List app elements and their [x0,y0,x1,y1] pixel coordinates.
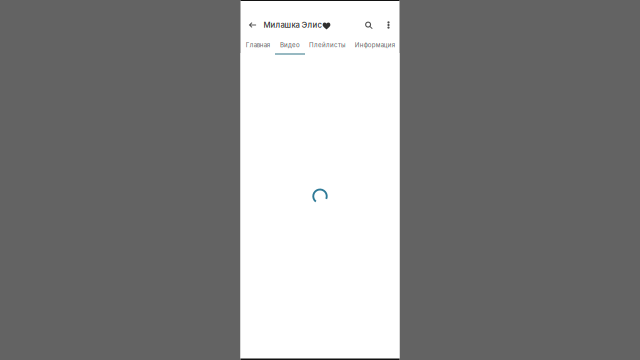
button[interactable]: Видео [275,37,305,55]
staticText: Информация [355,41,395,49]
button[interactable]: Плейлисты [305,37,350,55]
staticText: Милашка Элис [263,20,322,30]
staticText: Главная [246,41,270,49]
button[interactable]: Информация [350,37,399,55]
button[interactable]: Search [359,13,379,37]
button[interactable]: Главная [240,37,275,55]
button[interactable]: Back [245,13,263,37]
button[interactable]: More options [379,13,397,37]
staticText: Плейлисты [309,41,346,49]
staticText: Видео [280,41,300,49]
